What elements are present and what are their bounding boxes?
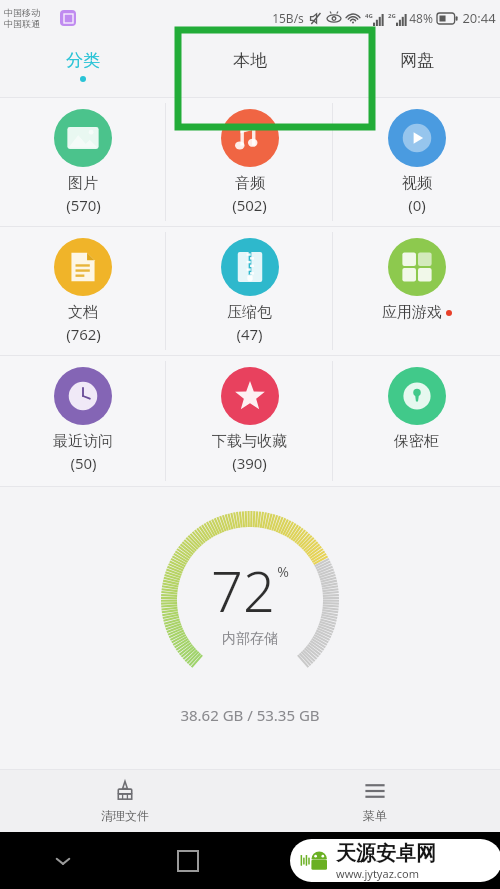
other: Back bbox=[428, 851, 448, 871]
staticText: 中国联通 bbox=[4, 18, 40, 29]
staticText: 2G bbox=[388, 12, 396, 20]
other: Hide bbox=[54, 852, 72, 870]
staticText: (390) bbox=[232, 453, 267, 473]
staticText: 最近访问 bbox=[53, 432, 113, 451]
staticText: (570) bbox=[66, 195, 101, 215]
button[interactable]: 本地 bbox=[166, 35, 333, 97]
staticText: 下载与收藏 bbox=[212, 432, 287, 451]
button[interactable]: 音频 bbox=[166, 98, 333, 226]
button[interactable]: 网盘 bbox=[333, 35, 500, 97]
staticText: www.jytyaz.com bbox=[336, 866, 419, 881]
staticText: 4G bbox=[365, 12, 373, 20]
staticText: 天源安卓网 bbox=[336, 841, 436, 866]
staticText: 分类 bbox=[66, 50, 100, 71]
button[interactable]: 保密柜 bbox=[333, 356, 500, 486]
staticText: 压缩包 bbox=[227, 303, 272, 322]
staticText: 38.62 GB / 53.35 GB bbox=[180, 705, 320, 725]
staticText: (47) bbox=[236, 324, 263, 344]
button[interactable]: 清理文件 bbox=[0, 770, 250, 832]
staticText: 应用游戏 bbox=[382, 303, 442, 322]
button[interactable]: 图片 bbox=[0, 98, 166, 226]
button[interactable]: 分类 bbox=[0, 35, 166, 97]
staticText: 内部存储 bbox=[222, 630, 278, 648]
button[interactable]: 文档 bbox=[0, 227, 166, 355]
staticText: (0) bbox=[408, 195, 426, 215]
staticText: 图片 bbox=[68, 174, 98, 193]
staticText: 音频 bbox=[235, 174, 265, 193]
staticText: 48% bbox=[409, 10, 433, 26]
staticText: (762) bbox=[66, 324, 101, 344]
button[interactable]: Recents bbox=[125, 832, 250, 889]
staticText: 文档 bbox=[68, 303, 98, 322]
staticText: 20:44 bbox=[462, 9, 496, 27]
button[interactable]: Home bbox=[250, 832, 375, 889]
button[interactable]: 菜单 bbox=[250, 770, 500, 832]
button[interactable]: 最近访问 bbox=[0, 356, 166, 486]
other: Home bbox=[302, 850, 324, 872]
staticText: 保密柜 bbox=[394, 432, 439, 451]
other: Recents bbox=[178, 851, 198, 871]
button[interactable]: 压缩包 bbox=[166, 227, 333, 355]
staticText: 网盘 bbox=[400, 50, 434, 71]
button[interactable]: 应用游戏 bbox=[333, 227, 500, 355]
button[interactable]: 视频 bbox=[333, 98, 500, 226]
button[interactable]: Back bbox=[375, 832, 500, 889]
staticText: 菜单 bbox=[363, 808, 387, 823]
staticText: (502) bbox=[232, 195, 267, 215]
staticText: 中国移动 bbox=[4, 7, 40, 18]
staticText: 72 bbox=[211, 552, 275, 628]
staticText: 15B/s bbox=[272, 10, 304, 26]
staticText: 清理文件 bbox=[101, 808, 149, 823]
staticText: % bbox=[277, 562, 289, 581]
staticText: 本地 bbox=[233, 50, 267, 71]
button[interactable]: 下载与收藏 bbox=[166, 356, 333, 486]
staticText: 视频 bbox=[402, 174, 432, 193]
staticText: (50) bbox=[70, 453, 97, 473]
